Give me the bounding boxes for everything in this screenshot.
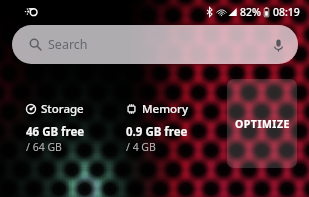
button[interactable]: Storage [26,101,85,154]
staticText: 46 GB free [26,124,85,140]
staticText: 82% [240,5,261,19]
staticText: Search [48,36,88,53]
staticText: 0.9 GB free [126,124,188,140]
staticText: / 4 GB [126,140,156,154]
staticText: / 64 GB [26,140,62,154]
button[interactable]: Search [12,25,298,64]
button[interactable]: Voice search [267,34,289,56]
button[interactable]: OPTIMIZE [227,79,297,168]
staticText: OPTIMIZE [235,117,290,131]
staticText: Memory [142,101,189,117]
staticText: Storage [41,101,84,117]
staticText: 08:19 [273,5,300,19]
button[interactable]: Memory [126,101,189,154]
